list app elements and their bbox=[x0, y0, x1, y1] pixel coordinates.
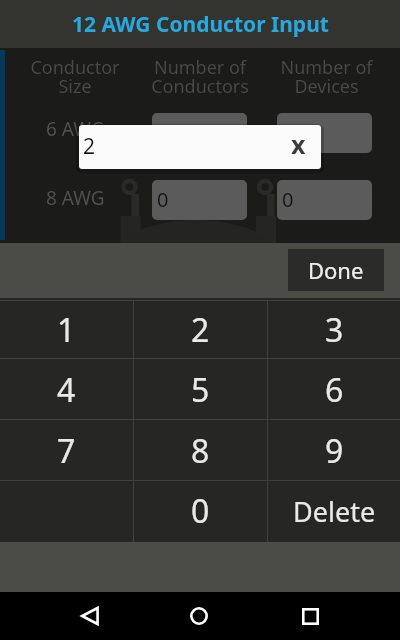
staticText: Number of Devices bbox=[280, 55, 373, 99]
button[interactable]: 5 bbox=[134, 358, 267, 419]
staticText: 4 bbox=[57, 368, 76, 412]
button[interactable]: Done bbox=[288, 249, 384, 291]
button[interactable]: Back bbox=[66, 592, 114, 640]
staticText: 0 bbox=[191, 489, 210, 533]
staticText: 6 bbox=[325, 368, 344, 412]
button[interactable]: 1 bbox=[0, 300, 133, 358]
staticText: x bbox=[291, 127, 306, 161]
button[interactable]: 4 bbox=[0, 358, 133, 419]
staticText: 0 bbox=[157, 186, 169, 213]
button[interactable]: Delete bbox=[268, 480, 400, 540]
staticText: Conductor Size bbox=[30, 55, 120, 99]
staticText: 0 bbox=[157, 119, 169, 146]
staticText: 8 AWG bbox=[46, 185, 105, 211]
button[interactable]: 0 bbox=[152, 113, 247, 153]
staticText: 12 AWG Conductor Input bbox=[72, 10, 329, 39]
staticText: Delete bbox=[293, 493, 376, 530]
button[interactable]: 7 bbox=[0, 419, 133, 480]
button[interactable]: 9 bbox=[268, 419, 400, 480]
staticText: 5 bbox=[191, 368, 210, 412]
button[interactable]: 0 bbox=[277, 113, 372, 153]
staticText: Done bbox=[308, 255, 364, 285]
button[interactable]: 0 bbox=[277, 180, 372, 220]
button[interactable]: 6 bbox=[268, 358, 400, 419]
staticText: 8 bbox=[191, 429, 210, 473]
button[interactable]: Recent apps bbox=[286, 592, 334, 640]
button[interactable]: Home bbox=[175, 592, 223, 640]
staticText: 9 bbox=[325, 429, 344, 473]
button[interactable]: 3 bbox=[268, 300, 400, 358]
staticText: 2 bbox=[191, 308, 210, 352]
button[interactable]: 8 bbox=[134, 419, 267, 480]
staticText: 1 bbox=[57, 308, 76, 352]
staticText: 0 bbox=[282, 186, 294, 213]
staticText: 2 bbox=[83, 132, 96, 161]
staticText: 6 AWG bbox=[46, 116, 105, 142]
button[interactable] bbox=[0, 480, 133, 540]
button[interactable]: 0 bbox=[152, 180, 247, 220]
button[interactable]: 2 bbox=[134, 300, 267, 358]
button[interactable]: Clear bbox=[277, 125, 321, 169]
staticText: 3 bbox=[325, 308, 344, 352]
button[interactable]: 0 bbox=[134, 480, 267, 540]
staticText: 7 bbox=[57, 429, 76, 473]
staticText: Number of Conductors bbox=[151, 55, 249, 99]
staticText: 0 bbox=[282, 119, 294, 146]
